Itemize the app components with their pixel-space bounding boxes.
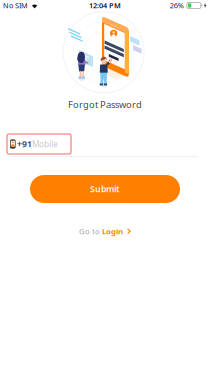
staticText: Mobile: [32, 138, 58, 150]
button[interactable]: +91: [7, 134, 71, 154]
staticText: Submit: [90, 183, 120, 195]
staticText: Forgot Password: [68, 98, 142, 111]
staticText: +91: [17, 138, 32, 150]
staticText: 26%: [170, 0, 184, 10]
button[interactable]: Submit: [30, 175, 180, 203]
staticText: No SIM: [3, 0, 28, 10]
staticText: Go to: [79, 226, 102, 236]
staticText: 12:04 PM: [89, 0, 121, 10]
button[interactable]: Go to: [73, 221, 137, 241]
staticText: Login: [102, 226, 123, 236]
